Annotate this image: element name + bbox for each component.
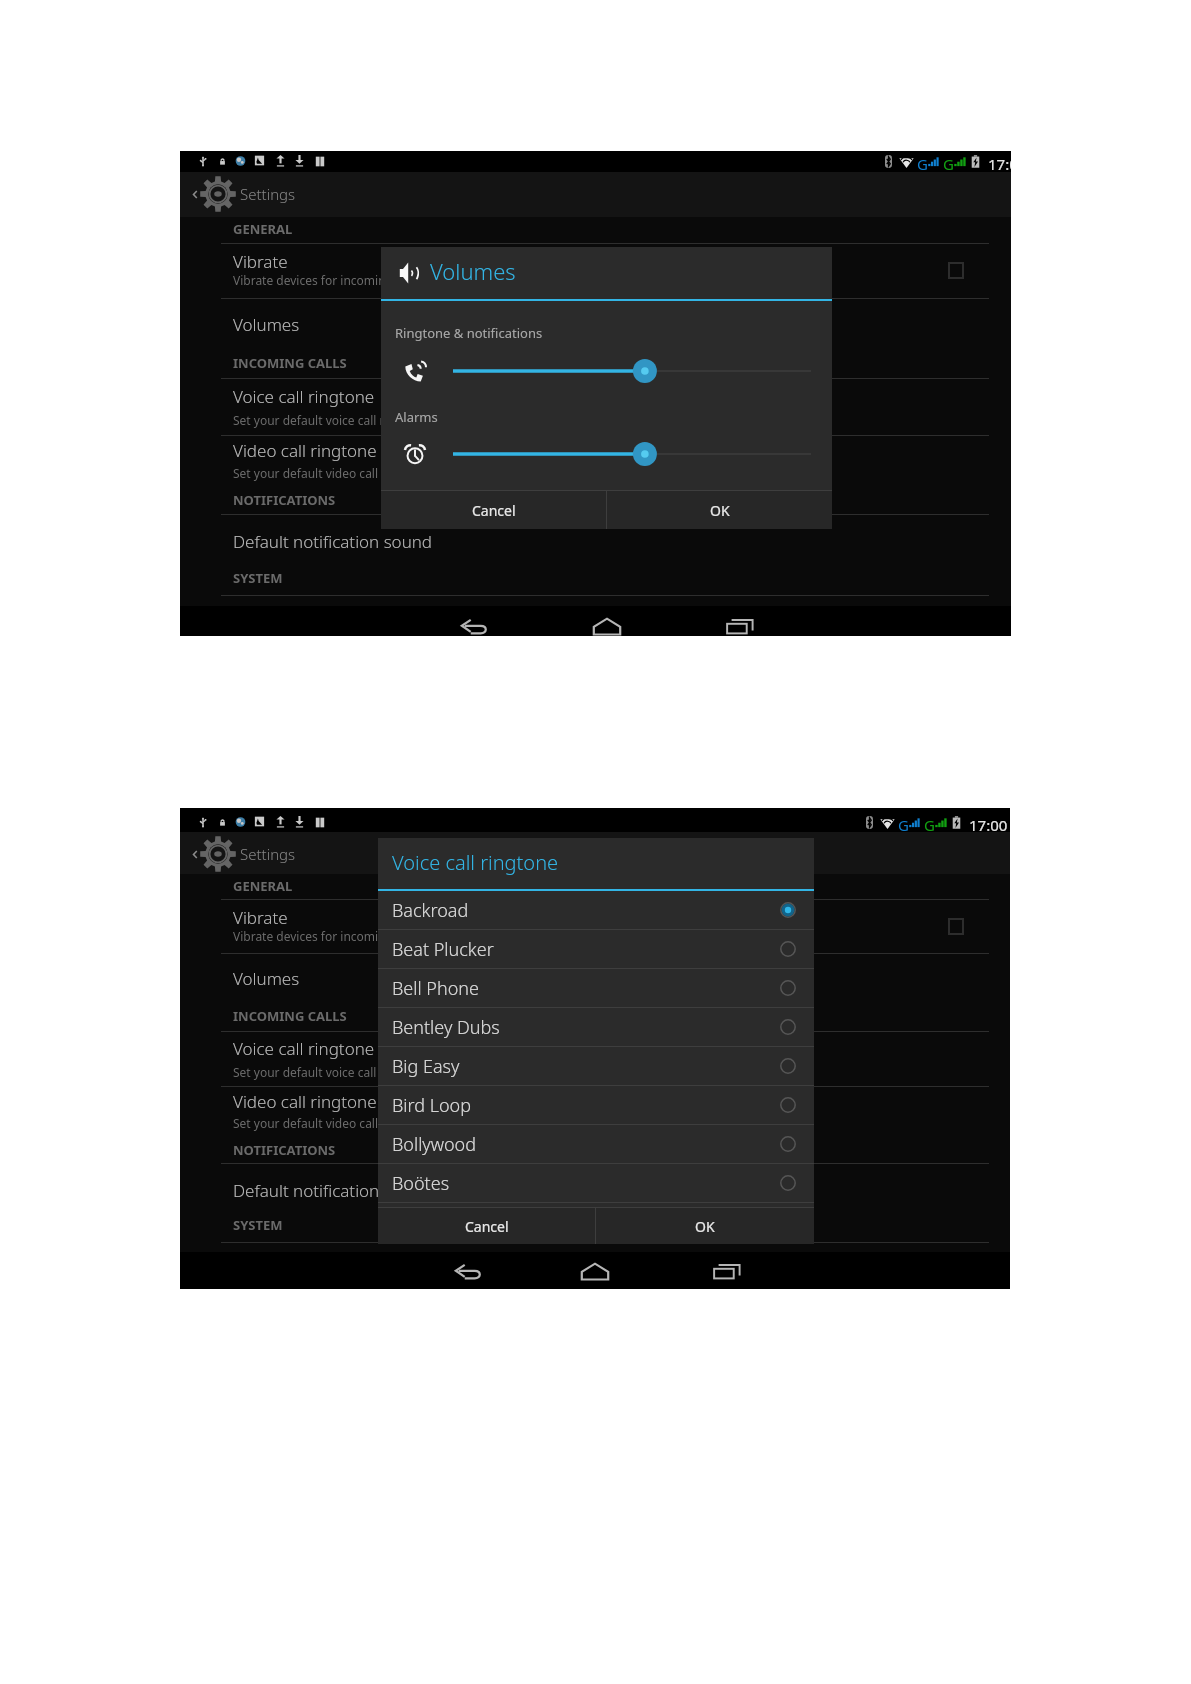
- staticText: Beat Plucker: [392, 937, 494, 962]
- button[interactable]: Backroad: [378, 891, 814, 929]
- staticText: Boötes: [392, 1171, 450, 1196]
- staticText: GENERAL: [233, 220, 293, 238]
- staticText: Vibrate: [233, 906, 288, 929]
- staticText: 17:00: [969, 815, 1008, 832]
- button[interactable]: [180, 428, 1011, 477]
- staticText: G: [917, 154, 928, 172]
- staticText: NOTIFICATIONS: [233, 491, 336, 509]
- staticText: Cancel: [472, 501, 516, 520]
- staticText: SYSTEM: [233, 569, 283, 587]
- button[interactable]: Volume slider: [453, 441, 811, 467]
- button[interactable]: [180, 301, 1011, 339]
- staticText: Big Easy: [392, 1054, 460, 1079]
- staticText: Bentley Dubs: [392, 1015, 500, 1040]
- staticText: GENERAL: [233, 877, 293, 895]
- staticText: Voice call ringtone: [392, 849, 559, 876]
- staticText: Settings: [240, 184, 296, 204]
- staticText: Set your default voice call ringtone: [233, 1064, 429, 1080]
- staticText: OK: [695, 1217, 715, 1236]
- staticText: Settings: [240, 844, 296, 864]
- button[interactable]: Volume slider: [453, 358, 811, 384]
- staticText: INCOMING CALLS: [233, 354, 347, 372]
- button[interactable]: [180, 244, 1011, 292]
- button[interactable]: [180, 900, 1010, 948]
- staticText: Ringtone & notifications: [395, 324, 543, 342]
- button[interactable]: Bentley Dubs: [378, 1008, 814, 1046]
- staticText: Voice call ringtone: [233, 385, 375, 408]
- staticText: SYSTEM: [233, 1216, 283, 1234]
- button[interactable]: Navigate up, Settings: [180, 832, 300, 874]
- button[interactable]: Beat Plucker: [378, 930, 814, 968]
- button[interactable]: Cancel: [381, 491, 606, 529]
- staticText: Default notification sound: [233, 530, 433, 553]
- button[interactable]: Bollywood: [378, 1125, 814, 1163]
- button[interactable]: Home: [551, 1252, 639, 1289]
- staticText: Set your default voice call ringtone: [233, 412, 429, 428]
- staticText: Voice call ringtone: [233, 1037, 375, 1060]
- staticText: G: [943, 154, 954, 172]
- button[interactable]: [180, 509, 1011, 547]
- staticText: Vibrate devices for incoming calls: [233, 272, 421, 288]
- staticText: Vibrate devices for incoming calls: [233, 928, 421, 944]
- button[interactable]: Back: [424, 1252, 512, 1289]
- staticText: Bird Loop: [392, 1093, 472, 1118]
- staticText: INCOMING CALLS: [233, 1007, 347, 1025]
- staticText: Alarms: [395, 408, 438, 426]
- button[interactable]: Vibrate: [949, 263, 963, 278]
- button[interactable]: OK: [607, 491, 832, 529]
- button[interactable]: Bird Loop: [378, 1086, 814, 1124]
- staticText: 17:00: [988, 154, 1011, 172]
- button[interactable]: Recent apps: [683, 1252, 771, 1289]
- button[interactable]: OK: [596, 1208, 814, 1244]
- staticText: Backroad: [392, 898, 469, 923]
- staticText: Default notification sound: [233, 1179, 433, 1202]
- staticText: Bell Phone: [392, 976, 479, 1001]
- staticText: G: [924, 815, 935, 832]
- staticText: Volumes: [233, 967, 300, 990]
- staticText: NOTIFICATIONS: [233, 1141, 336, 1159]
- staticText: Vibrate: [233, 250, 288, 273]
- button[interactable]: Vibrate: [949, 919, 963, 934]
- button[interactable]: Big Easy: [378, 1047, 814, 1085]
- button[interactable]: [180, 379, 1011, 424]
- staticText: Set your default video call ringtone: [233, 465, 430, 481]
- button[interactable]: Boötes: [378, 1164, 814, 1202]
- button[interactable]: [180, 1158, 1010, 1196]
- button[interactable]: [180, 1032, 1010, 1077]
- button[interactable]: Navigate up, Settings: [180, 172, 300, 217]
- button[interactable]: Recent apps: [696, 606, 784, 636]
- button[interactable]: Back: [430, 606, 518, 636]
- staticText: G: [898, 815, 909, 832]
- staticText: OK: [710, 501, 730, 520]
- button[interactable]: [180, 1079, 1010, 1128]
- staticText: Cancel: [465, 1217, 509, 1236]
- staticText: Video call ringtone: [233, 439, 377, 462]
- staticText: Set your default video call ringtone: [233, 1115, 430, 1131]
- button[interactable]: Home: [563, 606, 651, 636]
- staticText: Volumes: [430, 256, 516, 286]
- staticText: Bollywood: [392, 1132, 477, 1157]
- button[interactable]: Bell Phone: [378, 969, 814, 1007]
- button[interactable]: [180, 956, 1010, 994]
- button[interactable]: Cancel: [378, 1208, 595, 1244]
- staticText: Volumes: [233, 313, 300, 336]
- staticText: Video call ringtone: [233, 1090, 377, 1113]
